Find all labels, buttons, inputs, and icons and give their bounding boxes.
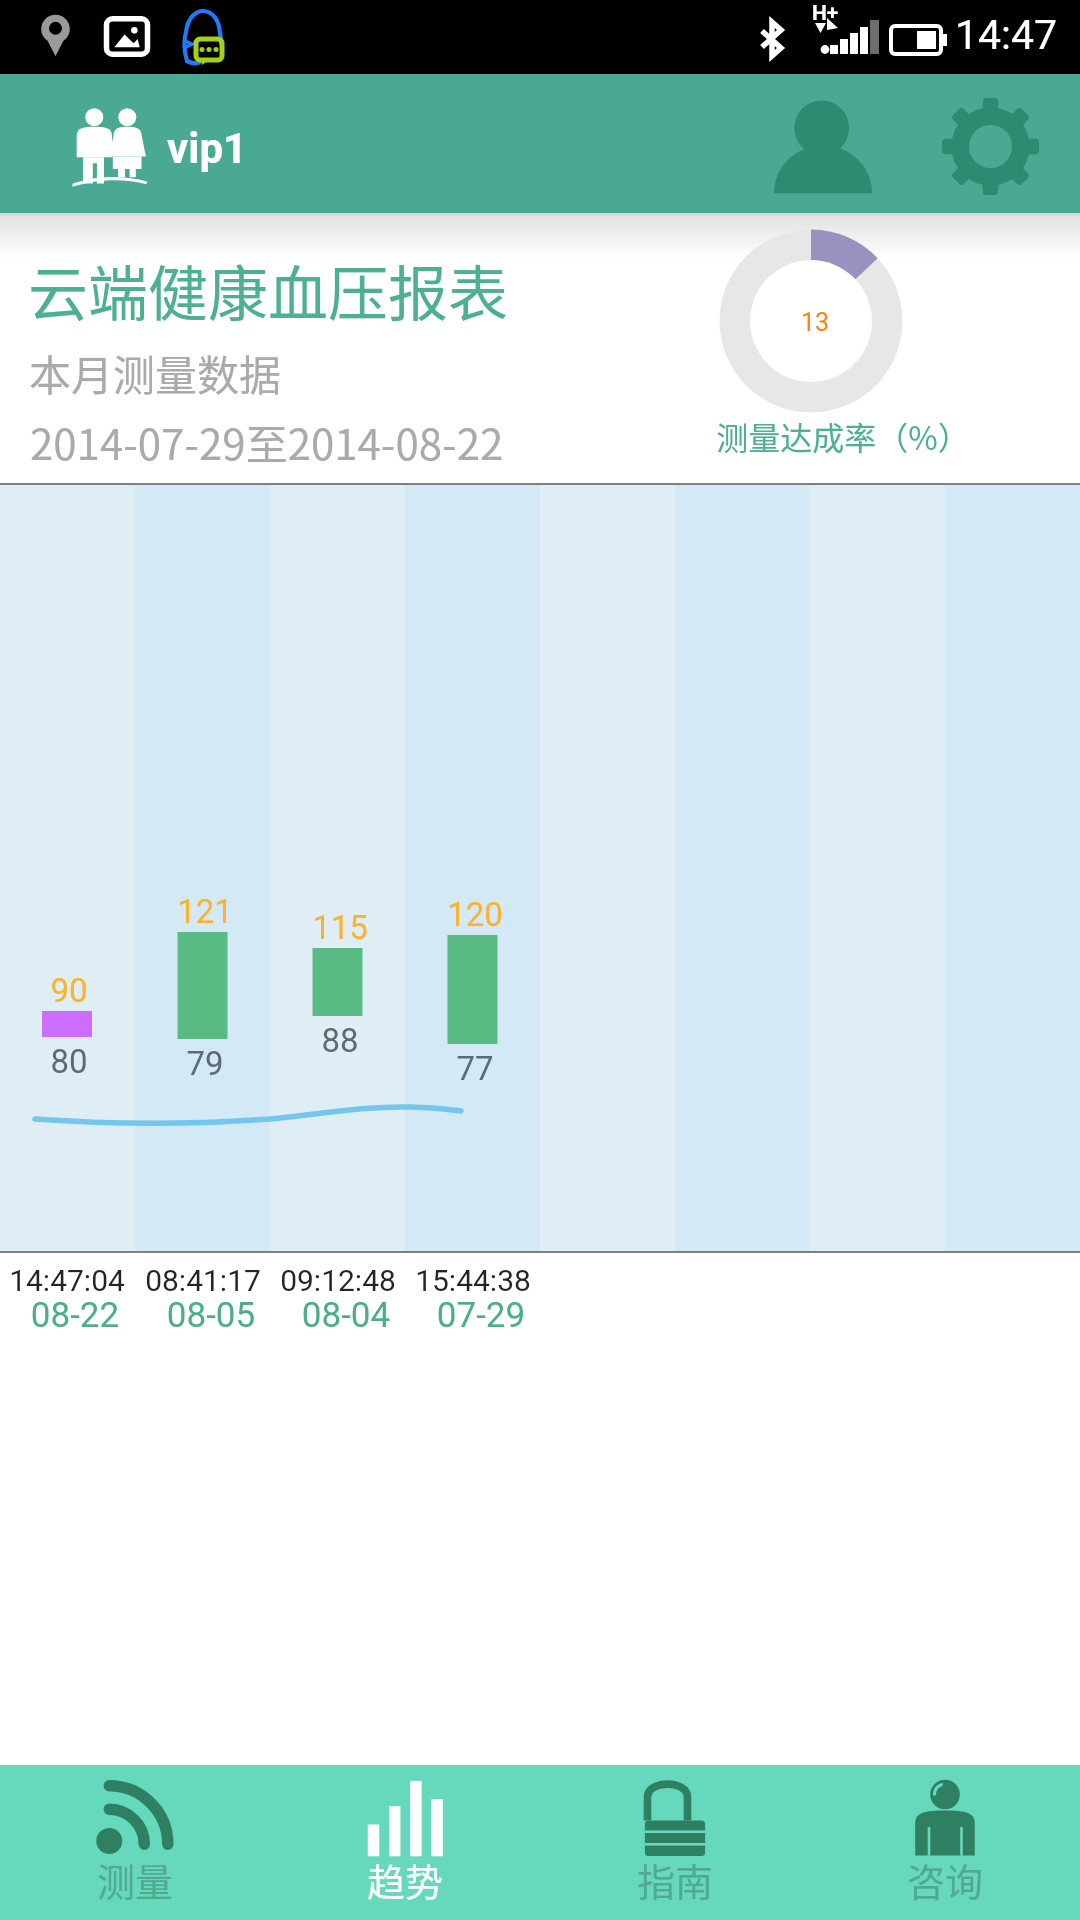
staticText: vip1 xyxy=(167,124,248,173)
staticText: 115 xyxy=(280,908,400,947)
staticText: 90 xyxy=(9,971,129,1010)
staticText: 咨询 xyxy=(907,1852,984,1907)
staticText: 08-04 xyxy=(256,1295,436,1336)
button[interactable]: Settings xyxy=(928,74,1052,213)
staticText: H+ xyxy=(812,1,839,26)
button[interactable]: 测量 xyxy=(0,1765,270,1920)
staticText: 14:47 xyxy=(955,11,1058,59)
staticText: 云端健康血压报表 xyxy=(28,246,508,333)
staticText: 08-05 xyxy=(121,1295,301,1336)
staticText: 趋势 xyxy=(367,1852,444,1907)
staticText: 121 xyxy=(145,892,265,931)
staticText: 77 xyxy=(415,1049,535,1088)
staticText: 88 xyxy=(280,1021,400,1060)
staticText: 08-22 xyxy=(0,1295,165,1336)
button[interactable]: vip1 xyxy=(71,74,248,213)
staticText: 本月测量数据 xyxy=(29,342,282,403)
staticText: 08:41:17 xyxy=(113,1263,293,1298)
staticText: 79 xyxy=(145,1044,265,1083)
staticText: 2014-07-29至2014-08-22 xyxy=(30,411,504,472)
button[interactable]: 咨询 xyxy=(810,1765,1080,1920)
button[interactable]: Profile xyxy=(761,74,885,213)
staticText: 07-29 xyxy=(391,1295,571,1336)
staticText: 80 xyxy=(9,1042,129,1081)
button[interactable]: 指南 xyxy=(540,1765,810,1920)
staticText: 指南 xyxy=(637,1852,714,1907)
staticText: 09:12:48 xyxy=(248,1263,428,1298)
staticText: 14:47:04 xyxy=(0,1263,157,1298)
staticText: 15:44:38 xyxy=(383,1263,563,1298)
staticText: 测量达成率（%） xyxy=(698,413,988,459)
staticText: 测量 xyxy=(97,1852,174,1907)
staticText: 13 xyxy=(704,308,926,337)
staticText: 120 xyxy=(415,895,535,934)
button[interactable]: 趋势 xyxy=(270,1765,540,1920)
